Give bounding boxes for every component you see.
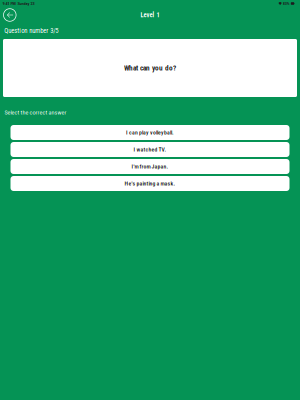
button[interactable]: I'm from Japan. — [10, 159, 289, 174]
staticText: 83% — [283, 1, 290, 6]
staticText: 9:41 PM Sunday 23 — [2, 1, 34, 6]
button[interactable]: I watched TV. — [10, 142, 289, 157]
staticText: I can play volleyball. — [126, 129, 174, 136]
staticText: Level 1 — [140, 11, 159, 19]
staticText: Question number 3/5 — [4, 27, 58, 35]
staticText: Select the correct answer — [4, 109, 66, 116]
staticText: He's painting a mask. — [124, 180, 175, 187]
staticText: I watched TV. — [133, 146, 166, 153]
staticText: What can you do? — [124, 64, 176, 72]
button[interactable]: He's painting a mask. — [10, 176, 289, 191]
staticText: I'm from Japan. — [131, 163, 168, 170]
button[interactable]: Back — [2, 7, 18, 23]
button[interactable]: I can play volleyball. — [10, 125, 289, 140]
